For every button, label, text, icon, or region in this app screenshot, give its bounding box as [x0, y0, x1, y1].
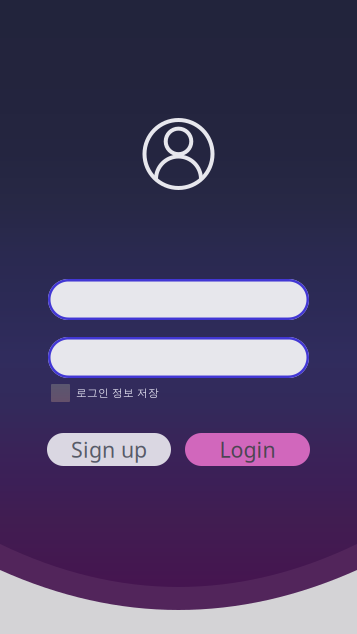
- button[interactable]: Sign up: [47, 433, 171, 466]
- button[interactable]: Input field: [48, 279, 309, 320]
- button[interactable]: 로그인 정보 저장: [51, 382, 306, 404]
- button[interactable]: Input field: [48, 337, 309, 378]
- button[interactable]: Login: [185, 433, 310, 466]
- staticText: Login: [219, 435, 275, 464]
- staticText: Sign up: [71, 435, 147, 464]
- staticText: 로그인 정보 저장: [76, 386, 159, 399]
